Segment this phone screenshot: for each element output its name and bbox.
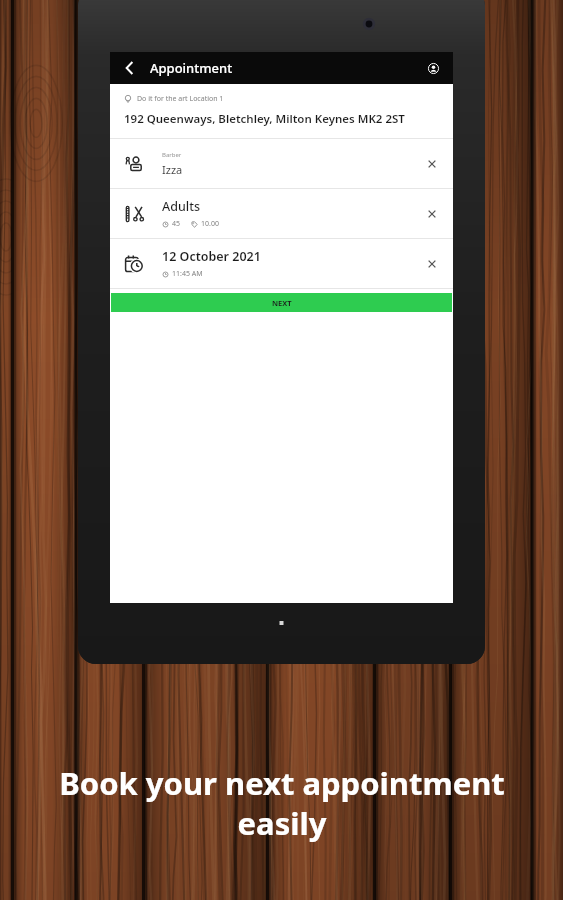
button[interactable]: NEXT	[111, 293, 452, 312]
staticText: 10.00	[201, 219, 219, 229]
staticText: Appointment	[150, 59, 233, 77]
staticText: 12 October 2021	[162, 248, 261, 265]
staticText: Izza	[162, 162, 183, 177]
button[interactable]: Profile	[423, 58, 443, 78]
button[interactable]: Remove	[421, 203, 443, 225]
button[interactable]: Adults	[110, 189, 453, 238]
button[interactable]: Remove	[421, 153, 443, 175]
staticText: NEXT	[272, 298, 292, 308]
staticText: 11:45 AM	[172, 269, 203, 279]
staticText: 192 Queenways, Bletchley, Milton Keynes …	[124, 111, 405, 127]
staticText: 45	[172, 219, 181, 229]
staticText: Do it for the art Location 1	[137, 94, 224, 104]
staticText: Book your next appointment easily	[59, 762, 505, 844]
staticText: Adults	[162, 198, 201, 215]
button[interactable]: Back	[118, 56, 142, 80]
staticText: Barber	[162, 151, 182, 159]
button[interactable]: Barber	[110, 139, 453, 188]
button[interactable]: Remove	[421, 253, 443, 275]
button[interactable]: 12 October 2021	[110, 239, 453, 288]
